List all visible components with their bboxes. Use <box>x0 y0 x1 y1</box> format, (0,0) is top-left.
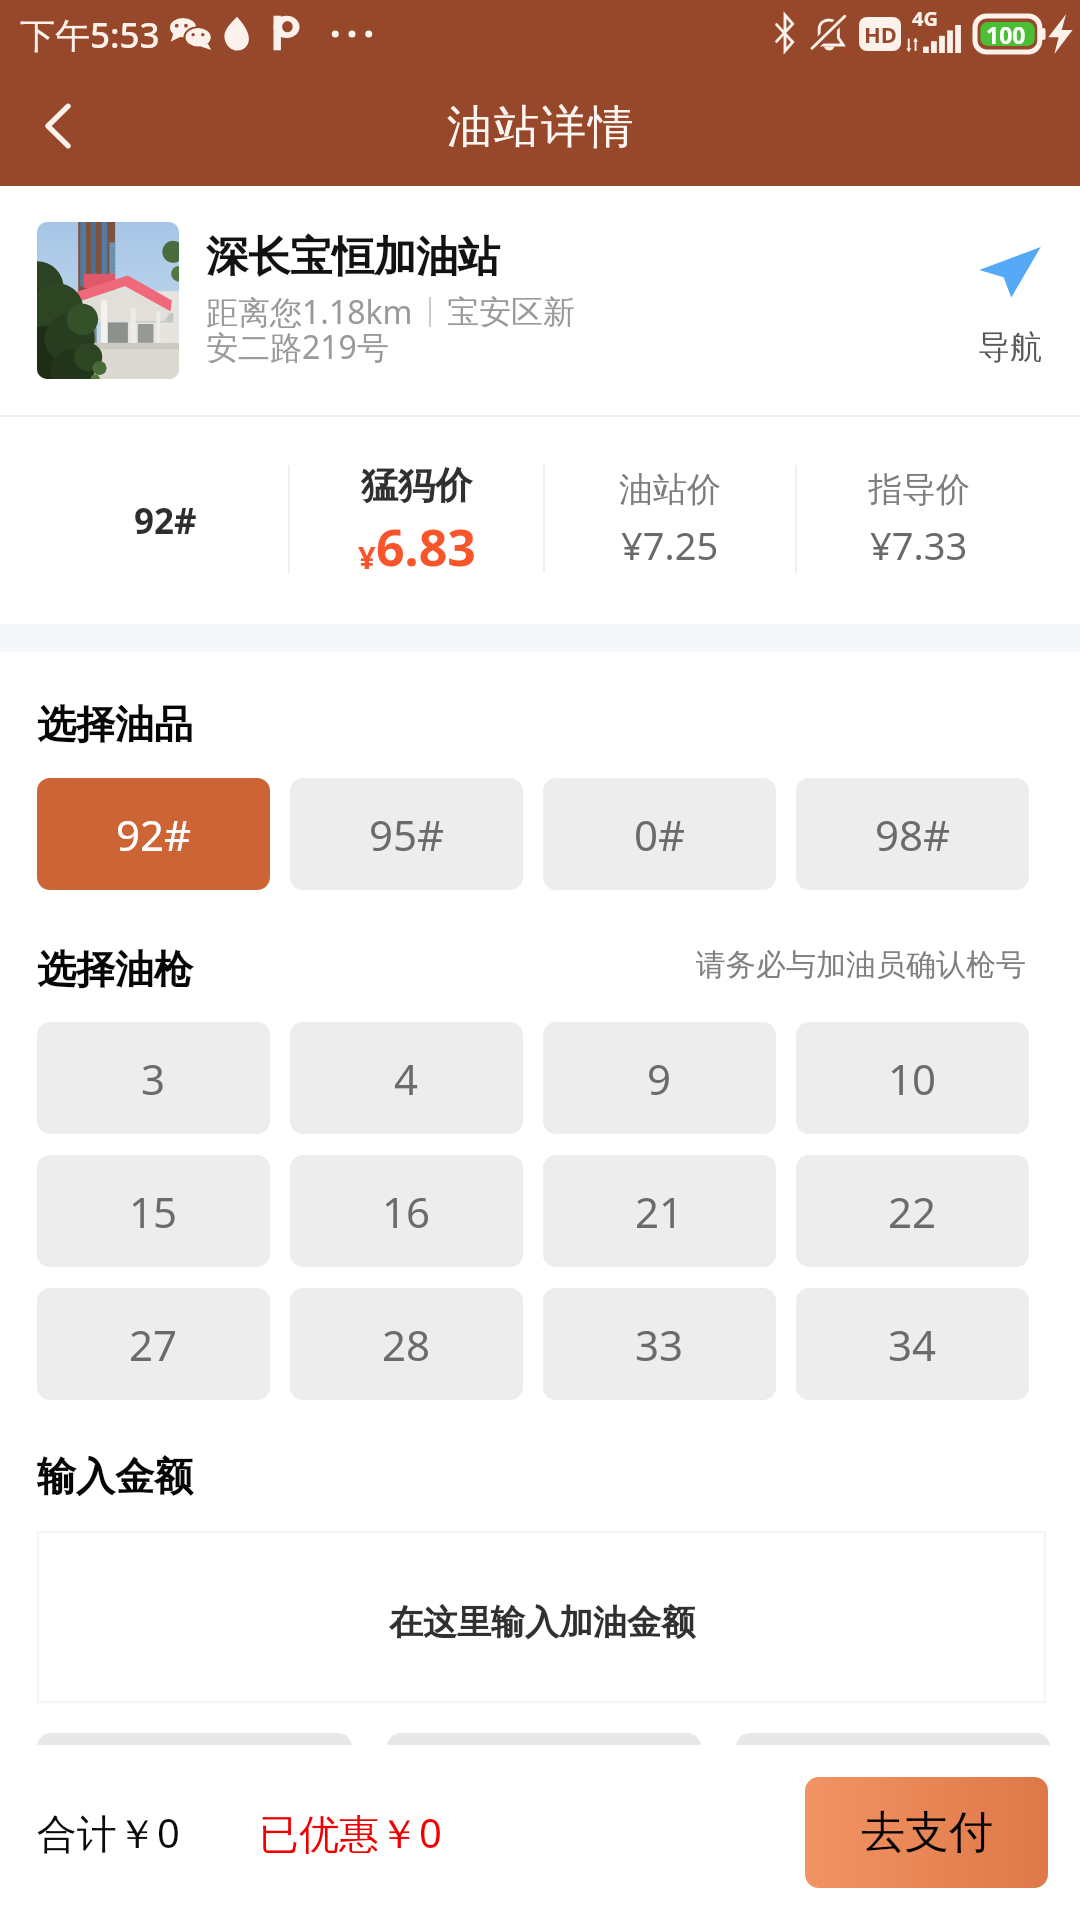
staticText: 油站价 <box>619 468 721 511</box>
staticText: 3 <box>141 1050 166 1107</box>
staticText: ¥7.25 <box>621 519 719 571</box>
staticText: 100 <box>986 19 1026 50</box>
button[interactable]: 3 <box>37 1022 270 1134</box>
button[interactable]: 0# <box>543 778 776 890</box>
staticText: 4G <box>912 5 938 32</box>
staticText: 导航 <box>978 327 1042 367</box>
staticText: 15 <box>129 1183 178 1240</box>
staticText: 选择油枪 <box>37 945 193 994</box>
button[interactable]: 在这里输入加油金额 <box>37 1531 1046 1703</box>
staticText: 在这里输入加油金额 <box>389 1601 695 1644</box>
staticText: 下午5:53 <box>20 11 160 59</box>
button[interactable]: 22 <box>796 1155 1029 1267</box>
staticText: 98# <box>875 806 951 863</box>
staticText: 去支付 <box>861 1805 993 1860</box>
staticText: 选择油品 <box>37 700 193 749</box>
staticText: 9 <box>647 1050 672 1107</box>
staticText: 安二路219号 <box>206 325 389 369</box>
button[interactable]: Quick amount 100 <box>37 1733 352 1833</box>
button[interactable]: 15 <box>37 1155 270 1267</box>
staticText: 16 <box>382 1183 431 1240</box>
staticText: 已优惠￥0 <box>259 1805 442 1860</box>
staticText: ¥ <box>358 536 376 578</box>
staticText: 猛犸价 <box>361 462 472 509</box>
button[interactable]: 去支付 <box>805 1777 1048 1888</box>
staticText: 21 <box>635 1183 684 1240</box>
staticText: 28 <box>382 1316 431 1373</box>
staticText: 4 <box>394 1050 419 1107</box>
staticText: 距离您1.18km <box>206 290 413 334</box>
button[interactable]: Quick amount 200 <box>387 1733 701 1833</box>
staticText: 10 <box>888 1050 937 1107</box>
button[interactable]: 34 <box>796 1288 1029 1400</box>
button[interactable]: 95# <box>290 778 523 890</box>
staticText: 输入金额 <box>37 1452 193 1501</box>
button[interactable]: 27 <box>37 1288 270 1400</box>
staticText: 92# <box>116 806 192 863</box>
staticText: 请务必与加油员确认枪号 <box>696 946 1026 984</box>
staticText: HD <box>864 19 897 49</box>
button[interactable]: 33 <box>543 1288 776 1400</box>
button[interactable]: 21 <box>543 1155 776 1267</box>
button[interactable]: 28 <box>290 1288 523 1400</box>
staticText: 22 <box>888 1183 937 1240</box>
button[interactable]: Navigate to station <box>940 236 1080 376</box>
staticText: 6.83 <box>376 513 476 581</box>
staticText: 合计￥0 <box>37 1805 180 1860</box>
staticText: ¥7.33 <box>870 519 968 571</box>
staticText: 深长宝恒加油站 <box>206 231 500 284</box>
staticText: 0# <box>634 806 686 863</box>
button[interactable]: Back <box>12 80 104 172</box>
staticText: 33 <box>635 1316 684 1373</box>
staticText: 27 <box>129 1316 178 1373</box>
button[interactable]: 16 <box>290 1155 523 1267</box>
staticText: 指导价 <box>868 468 970 511</box>
staticText: 95# <box>369 806 445 863</box>
button[interactable]: 9 <box>543 1022 776 1134</box>
staticText: 油站详情 <box>446 99 634 156</box>
button[interactable]: 98# <box>796 778 1029 890</box>
button[interactable]: 92# <box>37 778 270 890</box>
button[interactable]: Quick amount 300 <box>736 1733 1050 1833</box>
staticText: 92# <box>134 497 197 545</box>
staticText: 宝安区新 <box>447 292 575 332</box>
button[interactable]: 10 <box>796 1022 1029 1134</box>
button[interactable]: 4 <box>290 1022 523 1134</box>
staticText: 34 <box>888 1316 937 1373</box>
